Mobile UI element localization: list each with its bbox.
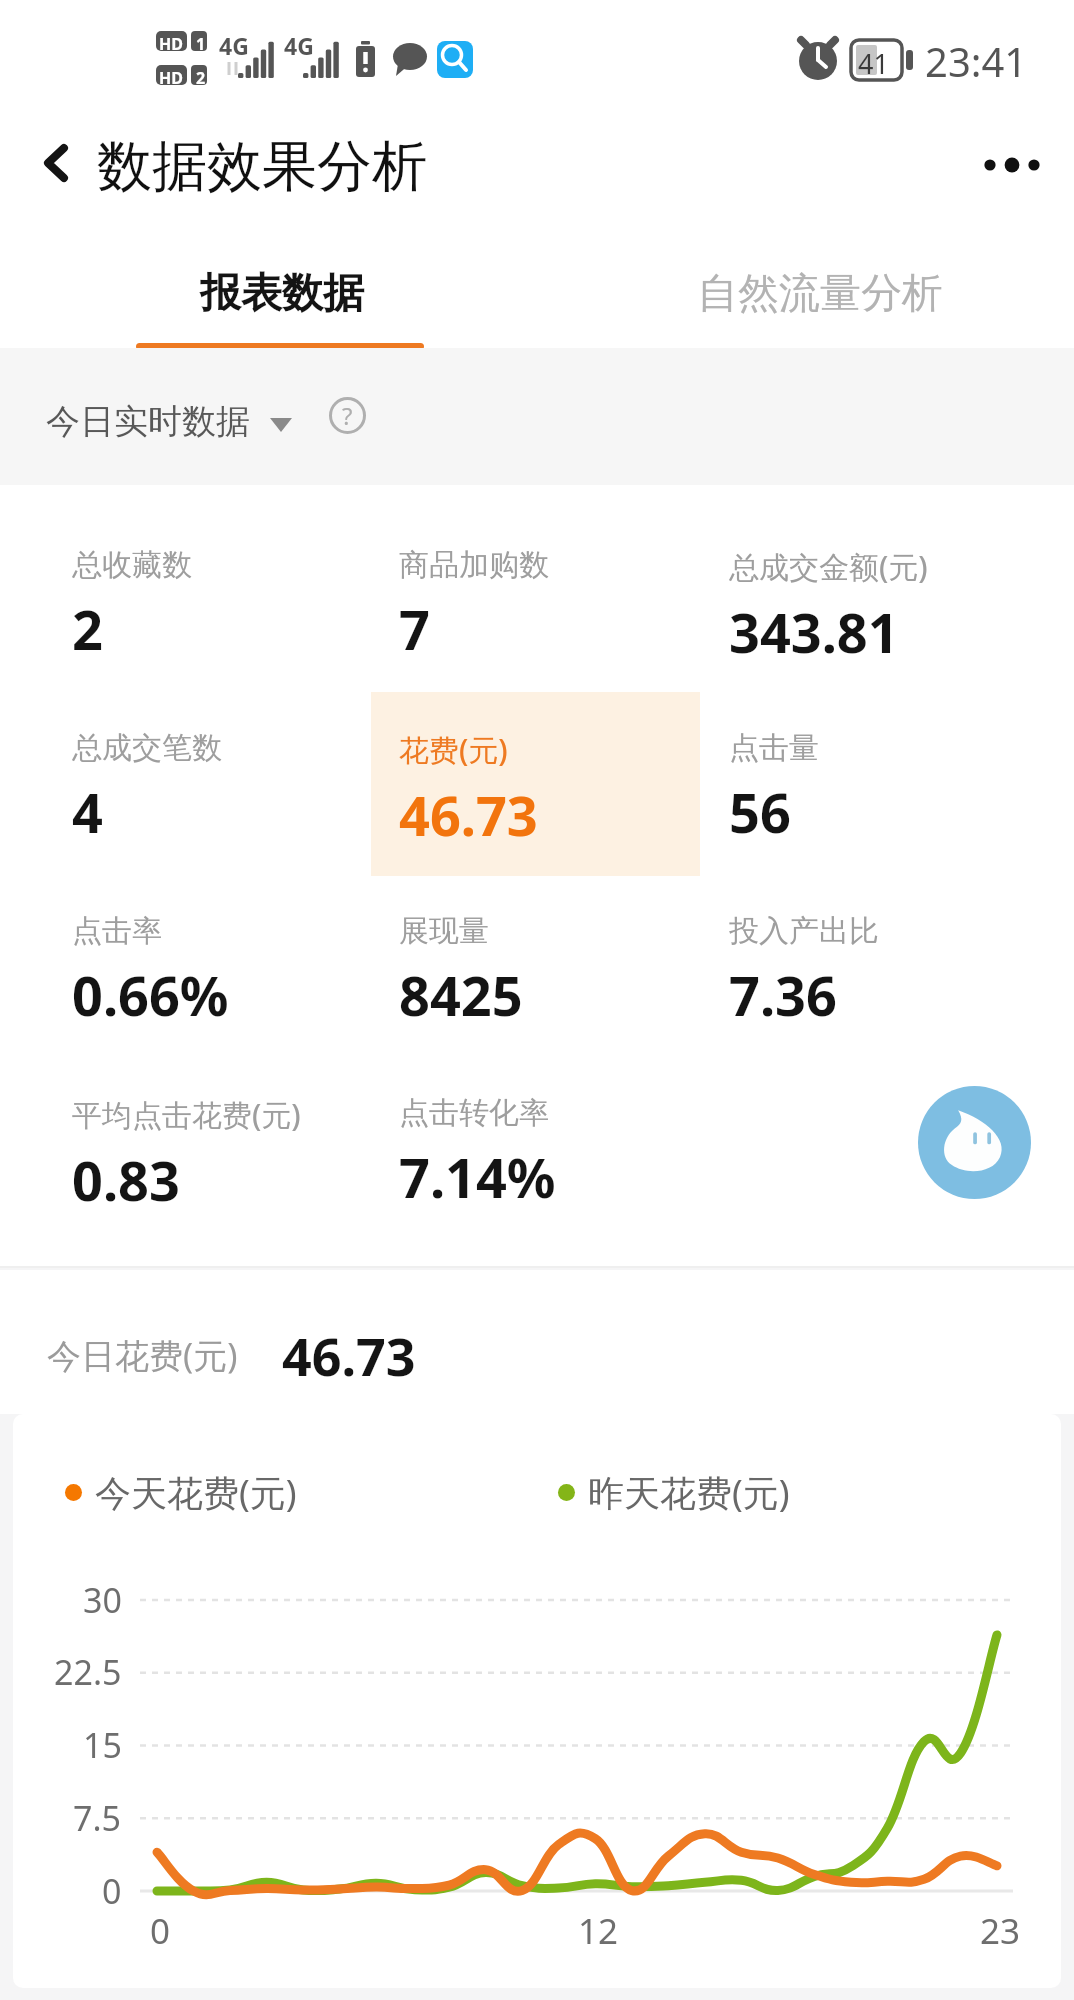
button[interactable]: 报表数据 (13, 230, 550, 348)
staticText: 商品加购数 (399, 546, 549, 584)
staticText: 4 (72, 775, 103, 849)
staticText: 12 (578, 1907, 619, 1955)
staticText: 点击转化率 (399, 1094, 549, 1132)
staticText: 今日实时数据 (46, 400, 250, 443)
staticText: 22.5 (54, 1649, 122, 1695)
staticText: 总成交金额(元) (729, 546, 928, 587)
staticText: 46.73 (399, 778, 538, 852)
button[interactable]: 今天花费(元) (65, 1468, 297, 1517)
staticText: ? (342, 399, 353, 432)
staticText: 7.14% (399, 1140, 556, 1214)
staticText: 0 (102, 1868, 122, 1914)
staticText: 总成交笔数 (72, 729, 222, 767)
button[interactable]: 花费(元) (371, 692, 700, 876)
staticText: 7 (399, 592, 430, 666)
button[interactable]: Back (18, 122, 94, 198)
staticText: 30 (83, 1577, 122, 1623)
staticText: 花费(元) (399, 729, 508, 770)
button[interactable]: 今日实时数据 (46, 400, 292, 443)
staticText: 8425 (399, 958, 523, 1032)
staticText: 总收藏数 (72, 546, 192, 584)
button[interactable]: 点击量 (700, 692, 1074, 876)
staticText: 2 (72, 592, 103, 666)
staticText: 7.36 (729, 958, 837, 1032)
staticText: 点击率 (72, 912, 162, 950)
staticText: 今日花费(元) (47, 1332, 238, 1378)
staticText: 展现量 (399, 912, 489, 950)
button[interactable]: 总收藏数 (30, 509, 371, 693)
staticText: 数据效果分析 (97, 132, 427, 201)
staticText: 7.5 (73, 1795, 122, 1841)
button[interactable]: 点击转化率 (371, 1057, 700, 1241)
staticText: 报表数据 (200, 268, 364, 320)
staticText: 56 (729, 775, 791, 849)
staticText: 4G (284, 30, 314, 61)
button[interactable]: 自然流量分析 (551, 230, 1074, 348)
button[interactable]: 平均点击花费(元) (30, 1057, 371, 1241)
staticText: 0.83 (72, 1143, 180, 1217)
staticText: 今天花费(元) (95, 1468, 297, 1517)
staticText: 46.73 (282, 1320, 416, 1391)
button[interactable]: 点击率 (30, 875, 371, 1059)
button[interactable]: Help (329, 397, 366, 434)
staticText: 投入产出比 (729, 912, 879, 950)
staticText: 2 (196, 67, 206, 89)
staticText: 41 (858, 45, 889, 82)
staticText: 0.66% (72, 958, 229, 1032)
staticText: 平均点击花费(元) (72, 1094, 301, 1135)
staticText: 自然流量分析 (697, 268, 943, 320)
button[interactable]: 总成交金额(元) (700, 509, 1074, 693)
staticText: HD (159, 33, 183, 55)
staticText: 0 (150, 1907, 171, 1955)
staticText: 4G (219, 30, 249, 61)
staticText: 343.81 (729, 595, 899, 669)
button[interactable]: More options (961, 123, 1057, 199)
button[interactable]: 总成交笔数 (30, 692, 371, 876)
button[interactable]: 投入产出比 (700, 875, 1074, 1059)
staticText: 23 (980, 1907, 1021, 1955)
staticText: 昨天花费(元) (588, 1468, 790, 1517)
button[interactable]: 展现量 (371, 875, 700, 1059)
staticText: HD (159, 67, 183, 89)
button[interactable]: Assistant (918, 1086, 1031, 1199)
staticText: 点击量 (729, 729, 819, 767)
staticText: 15 (83, 1722, 122, 1768)
staticText: 23:41 (925, 34, 1028, 88)
staticText: 1 (196, 33, 206, 55)
button[interactable]: 商品加购数 (371, 509, 700, 693)
button[interactable]: 昨天花费(元) (558, 1468, 790, 1517)
